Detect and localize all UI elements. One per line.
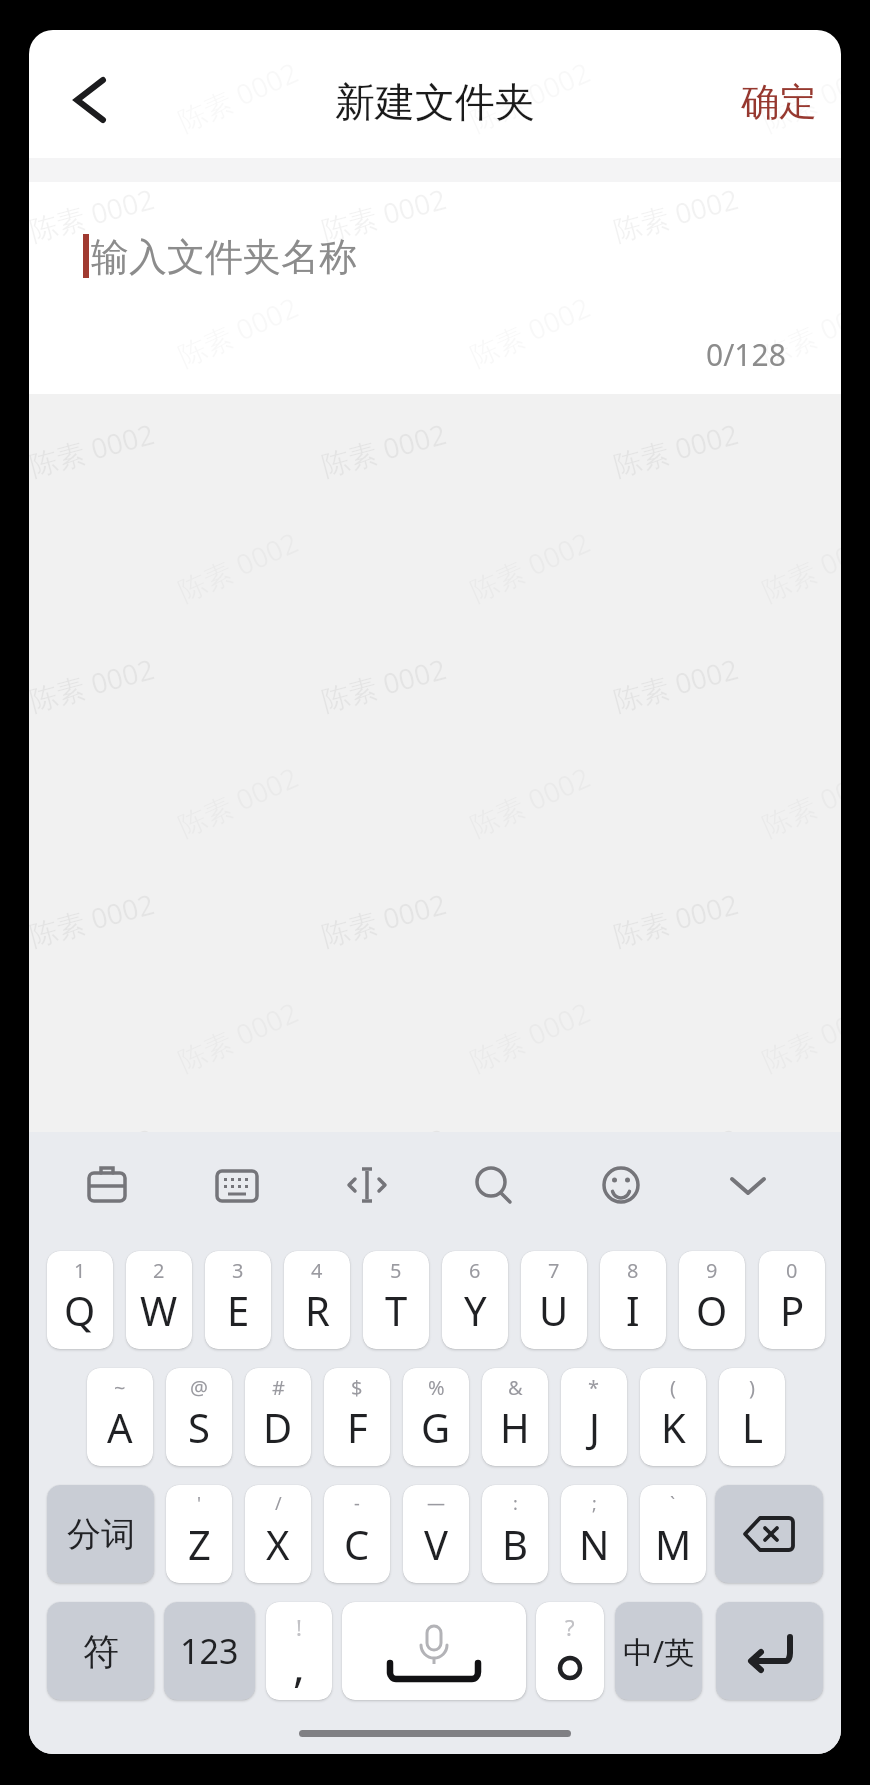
- button[interactable]: [724, 1161, 772, 1209]
- staticText: G: [421, 1400, 451, 1454]
- button[interactable]: $: [324, 1368, 390, 1466]
- staticText: Q: [64, 1283, 96, 1337]
- staticText: $: [351, 1374, 363, 1401]
- staticText: 4: [311, 1257, 323, 1284]
- staticText: Z: [188, 1517, 211, 1571]
- staticText: D: [263, 1400, 293, 1454]
- staticText: W: [140, 1283, 178, 1337]
- staticText: `: [670, 1491, 676, 1516]
- staticText: 陈素 0002: [317, 1119, 451, 1189]
- staticText: —: [427, 1491, 445, 1516]
- staticText: 123: [180, 1628, 239, 1674]
- staticText: 输入文件夹名称: [91, 233, 357, 281]
- staticText: 1: [74, 1257, 86, 1284]
- button[interactable]: -: [324, 1485, 390, 1583]
- staticText: 陈素 0002: [756, 288, 841, 374]
- button[interactable]: 9: [679, 1251, 745, 1349]
- button[interactable]: !: [266, 1602, 332, 1700]
- button[interactable]: [213, 1161, 261, 1209]
- staticText: 3: [232, 1257, 244, 1284]
- button[interactable]: &: [482, 1368, 548, 1466]
- button[interactable]: (: [640, 1368, 706, 1466]
- staticText: 0: [786, 1257, 798, 1284]
- staticText: ': [197, 1491, 202, 1516]
- staticText: L: [742, 1400, 763, 1454]
- staticText: N: [579, 1517, 610, 1571]
- staticText: F: [347, 1400, 368, 1454]
- staticText: 确定: [741, 78, 817, 126]
- button[interactable]: [63, 66, 117, 134]
- button[interactable]: 中/英: [615, 1602, 702, 1700]
- button[interactable]: #: [245, 1368, 311, 1466]
- staticText: *: [588, 1374, 600, 1401]
- staticText: 陈素 0002: [317, 649, 451, 719]
- button[interactable]: 123: [164, 1602, 255, 1700]
- button[interactable]: ): [719, 1368, 785, 1466]
- button[interactable]: %: [403, 1368, 469, 1466]
- button[interactable]: —: [403, 1485, 469, 1583]
- button[interactable]: [597, 1161, 645, 1209]
- button[interactable]: 8: [600, 1251, 666, 1349]
- button[interactable]: ~: [87, 1368, 153, 1466]
- button[interactable]: @: [166, 1368, 232, 1466]
- button[interactable]: 7: [521, 1251, 587, 1349]
- staticText: J: [589, 1400, 600, 1454]
- button[interactable]: 确定: [717, 72, 817, 132]
- button[interactable]: 2: [126, 1251, 192, 1349]
- staticText: 陈素 0002: [317, 179, 451, 249]
- staticText: 7: [548, 1257, 560, 1284]
- button[interactable]: ?: [536, 1602, 604, 1700]
- staticText: M: [655, 1517, 692, 1571]
- button[interactable]: 1: [47, 1251, 113, 1349]
- button[interactable]: [343, 1161, 391, 1209]
- button[interactable]: 分词: [47, 1485, 154, 1583]
- button[interactable]: :: [482, 1485, 548, 1583]
- button[interactable]: 符: [47, 1602, 154, 1700]
- staticText: E: [227, 1283, 250, 1337]
- button[interactable]: 5: [363, 1251, 429, 1349]
- staticText: 中/英: [623, 1631, 695, 1672]
- button[interactable]: [715, 1485, 823, 1583]
- button[interactable]: 4: [284, 1251, 350, 1349]
- staticText: 陈素 0002: [29, 649, 159, 719]
- button[interactable]: ': [166, 1485, 232, 1583]
- staticText: 陈素 0002: [609, 414, 743, 484]
- button[interactable]: `: [640, 1485, 706, 1583]
- button[interactable]: 3: [205, 1251, 271, 1349]
- staticText: 陈素 0002: [609, 179, 743, 249]
- staticText: ,: [293, 1635, 305, 1695]
- staticText: 2: [153, 1257, 165, 1284]
- staticText: &: [508, 1374, 523, 1401]
- staticText: 陈素 0002: [317, 414, 451, 484]
- staticText: 陈素 0002: [29, 179, 159, 249]
- button[interactable]: [469, 1161, 517, 1209]
- staticText: ~: [114, 1374, 126, 1401]
- button[interactable]: ;: [561, 1485, 627, 1583]
- staticText: S: [188, 1400, 210, 1454]
- button[interactable]: 6: [442, 1251, 508, 1349]
- staticText: ): [749, 1374, 755, 1401]
- staticText: ?: [565, 1612, 575, 1642]
- staticText: :: [513, 1491, 518, 1516]
- staticText: -: [354, 1491, 360, 1516]
- button[interactable]: *: [561, 1368, 627, 1466]
- staticText: (: [670, 1374, 676, 1401]
- button[interactable]: /: [245, 1485, 311, 1583]
- button[interactable]: 0: [759, 1251, 825, 1349]
- staticText: !: [296, 1612, 302, 1642]
- staticText: P: [780, 1283, 805, 1337]
- button[interactable]: [83, 1161, 131, 1209]
- button[interactable]: [716, 1602, 823, 1700]
- staticText: %: [428, 1374, 445, 1401]
- button[interactable]: [342, 1602, 526, 1700]
- staticText: 陈素 0002: [609, 1119, 743, 1189]
